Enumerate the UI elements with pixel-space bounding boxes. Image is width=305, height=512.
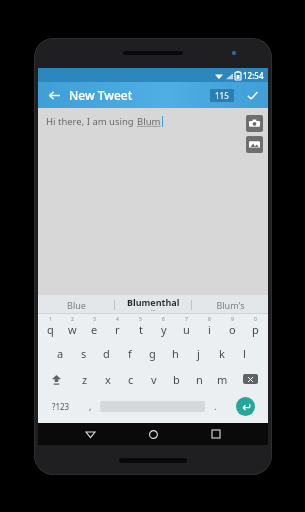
staticText: 0 [254, 316, 257, 323]
button[interactable]: 7 [175, 314, 198, 340]
staticText: o [229, 322, 236, 337]
staticText: x [105, 372, 111, 387]
staticText: n [196, 372, 203, 387]
staticText: 12:54 [243, 70, 264, 81]
button[interactable]: Take photo [246, 115, 263, 132]
staticText: z [82, 372, 88, 387]
staticText: m [217, 372, 228, 387]
button[interactable]: s [72, 340, 95, 366]
staticText: q [47, 322, 54, 337]
staticText: 8 [208, 316, 211, 323]
button[interactable]: . [205, 392, 225, 420]
button[interactable]: j [187, 340, 210, 366]
button[interactable]: 5 [129, 314, 152, 340]
button[interactable]: h [164, 340, 187, 366]
staticText: d [103, 346, 110, 361]
staticText: p [252, 322, 259, 337]
staticText: , [89, 400, 92, 412]
button[interactable]: Shift [39, 366, 73, 392]
button[interactable]: 115 [210, 89, 234, 102]
staticText: l [243, 346, 246, 361]
staticText: Blum's [216, 299, 245, 311]
button[interactable]: l [233, 340, 256, 366]
button[interactable]: 1 [39, 314, 61, 340]
staticText: a [57, 346, 64, 361]
staticText: k [219, 346, 225, 361]
staticText: 2 [71, 316, 74, 323]
button[interactable]: Blum's [192, 295, 268, 314]
staticText: ••• [151, 308, 156, 313]
staticText: 3 [93, 316, 96, 323]
staticText: b [173, 372, 180, 387]
button[interactable]: 9 [221, 314, 244, 340]
staticText: s [81, 346, 87, 361]
staticText: i [208, 322, 211, 337]
staticText: g [149, 346, 156, 361]
button[interactable]: Enter [236, 397, 255, 416]
staticText: ?123 [52, 401, 70, 412]
staticText: Blum [137, 115, 161, 128]
staticText: 9 [231, 316, 234, 323]
staticText: 7 [185, 316, 188, 323]
button[interactable]: f [118, 340, 141, 366]
button[interactable]: 3 [83, 314, 106, 340]
staticText: y [161, 322, 167, 337]
staticText: 6 [162, 316, 165, 323]
button[interactable]: a [49, 340, 72, 366]
button[interactable]: k [210, 340, 233, 366]
button[interactable]: Back [79, 423, 101, 445]
button[interactable]: 4 [106, 314, 129, 340]
staticText: 115 [215, 90, 229, 101]
button[interactable]: Blue [38, 295, 114, 314]
staticText: j [197, 346, 200, 361]
button[interactable]: d [95, 340, 118, 366]
button[interactable]: Send tweet [242, 85, 262, 105]
staticText: h [172, 346, 179, 361]
button[interactable]: ?123 [41, 392, 80, 420]
staticText: Blumenthal [127, 296, 180, 308]
staticText: 4 [116, 316, 119, 323]
staticText: w [68, 322, 77, 337]
button[interactable]: Add image [246, 136, 263, 153]
staticText: New Tweet [69, 87, 133, 103]
button[interactable]: g [141, 340, 164, 366]
staticText: r [115, 322, 120, 337]
staticText: c [128, 372, 134, 387]
button[interactable]: n [188, 366, 211, 392]
button[interactable]: , [80, 392, 100, 420]
staticText: . [214, 400, 217, 412]
button[interactable]: v [142, 366, 165, 392]
button[interactable]: c [119, 366, 142, 392]
button[interactable]: Back [44, 85, 64, 105]
button[interactable]: z [73, 366, 96, 392]
staticText: v [151, 372, 157, 387]
button[interactable]: m [211, 366, 234, 392]
button[interactable]: Home [142, 423, 164, 445]
staticText: 1 [49, 316, 52, 323]
button[interactable]: 6 [152, 314, 175, 340]
staticText: e [91, 322, 98, 337]
button[interactable]: 8 [198, 314, 221, 340]
button[interactable]: b [165, 366, 188, 392]
button[interactable]: Recent apps [205, 423, 227, 445]
button[interactable]: 0 [244, 314, 267, 340]
staticText: u [183, 322, 190, 337]
button[interactable]: 2 [61, 314, 83, 340]
button[interactable]: Backspace [234, 366, 267, 392]
staticText: Hi there, I am using [46, 115, 137, 128]
staticText: t [139, 322, 143, 337]
staticText: 5 [139, 316, 142, 323]
staticText: f [128, 346, 132, 361]
staticText: Blue [67, 299, 86, 311]
button[interactable]: x [96, 366, 119, 392]
